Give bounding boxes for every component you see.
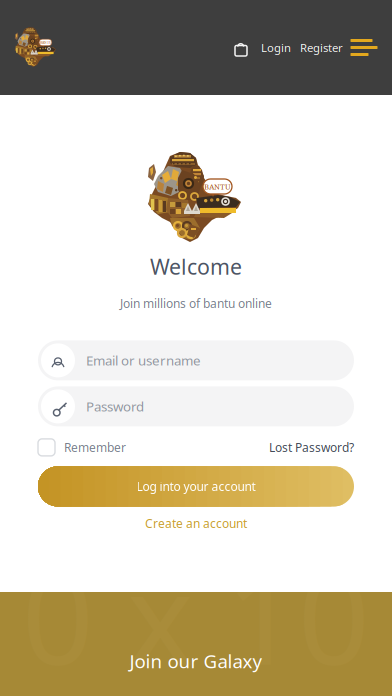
staticText: Log into your account bbox=[136, 478, 255, 494]
staticText: Welcome bbox=[150, 252, 242, 281]
button[interactable]: Register bbox=[296, 35, 347, 59]
staticText: Join millions of bantu online bbox=[120, 295, 272, 311]
button[interactable]: Menu bbox=[347, 35, 377, 59]
button[interactable]: Lost Password? bbox=[269, 438, 354, 456]
staticText: Register bbox=[300, 40, 343, 55]
staticText: Join our Galaxy bbox=[129, 648, 262, 674]
staticText: Email or username bbox=[86, 351, 201, 369]
button[interactable]: Log into your account bbox=[38, 466, 354, 506]
staticText: Password bbox=[86, 397, 144, 415]
button[interactable]: Create an account bbox=[145, 516, 247, 530]
button[interactable]: Bantu home bbox=[0, 27, 64, 68]
button[interactable]: Cart bbox=[227, 35, 256, 59]
staticText: Remember bbox=[64, 439, 126, 455]
staticText: Login bbox=[261, 40, 291, 55]
staticText: BANTU bbox=[40, 40, 51, 45]
button[interactable]: Remember bbox=[38, 438, 126, 456]
staticText: Lost Password? bbox=[269, 439, 354, 455]
staticText: BANTU bbox=[204, 181, 231, 192]
staticText: Create an account bbox=[145, 515, 247, 531]
staticText: 0 x 10 bbox=[22, 531, 370, 696]
button[interactable]: Login bbox=[256, 35, 296, 59]
